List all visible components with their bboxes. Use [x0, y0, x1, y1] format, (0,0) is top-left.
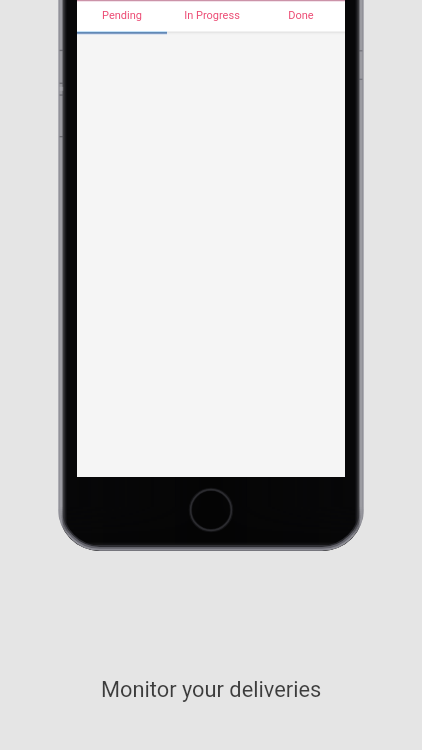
button[interactable]: Pending: [77, 2, 167, 31]
staticText: Pending: [102, 9, 142, 22]
button[interactable]: In Progress: [167, 2, 256, 31]
button[interactable]: Done: [256, 2, 345, 31]
staticText: Monitor your deliveries: [101, 677, 322, 703]
staticText: In Progress: [184, 9, 240, 22]
staticText: Done: [288, 9, 314, 22]
